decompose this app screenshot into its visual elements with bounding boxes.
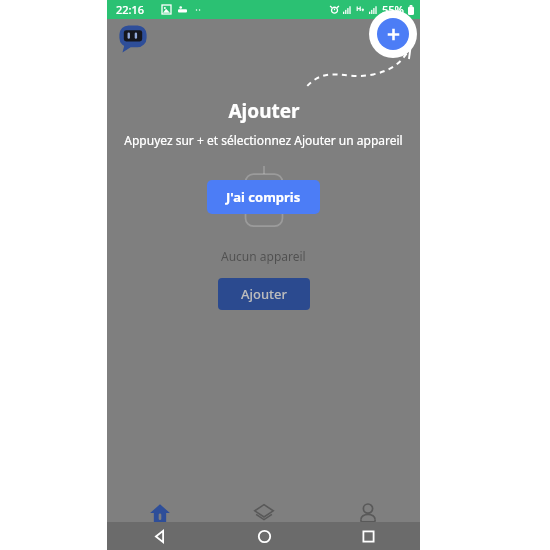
- staticText: 22:16: [116, 2, 145, 17]
- staticText: Appuyez sur + et sélectionnez Ajouter un…: [124, 132, 403, 148]
- button[interactable]: Smart: [212, 494, 316, 546]
- staticText: Aucun appareil: [221, 248, 306, 264]
- button[interactable]: Ajouter: [218, 278, 310, 310]
- staticText: Smart: [251, 527, 277, 539]
- button[interactable]: Ajouter: [377, 18, 409, 50]
- staticText: Ma "Maison": [132, 527, 187, 539]
- staticText: J'ai compris: [226, 188, 301, 206]
- button[interactable]: Applications récentes: [316, 522, 420, 550]
- button[interactable]: Accueil: [212, 522, 316, 550]
- staticText: Profil: [357, 527, 380, 539]
- button[interactable]: Assistant: [116, 21, 150, 55]
- staticText: 55%: [382, 2, 404, 17]
- button[interactable]: J'ai compris: [207, 180, 320, 214]
- button[interactable]: Retour: [107, 522, 212, 550]
- staticText: Ajouter: [241, 285, 288, 303]
- button[interactable]: Ma "Maison": [107, 494, 212, 546]
- staticText: Ajouter: [228, 98, 300, 124]
- button[interactable]: Profil: [316, 494, 420, 546]
